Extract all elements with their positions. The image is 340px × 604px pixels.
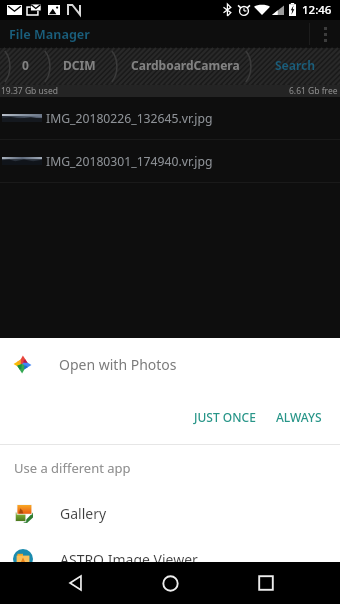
button[interactable]: More options [310,20,340,48]
button[interactable]: ALWAYS [269,402,329,432]
staticText: IMG_20180226_132645.vr.jpg [46,110,213,127]
button[interactable]: IMG_20180226_132645.vr.jpg [0,97,340,139]
button[interactable]: File Manager [0,20,340,48]
staticText: Open with Photos [59,355,177,374]
staticText: 12:46 [302,2,332,18]
staticText: DCIM [63,57,96,73]
button[interactable]: Open with Photos [0,338,340,390]
button[interactable]: CardboardCamera [121,48,250,85]
staticText: IMG_20180301_174940.vr.jpg [46,153,213,170]
button[interactable]: Back [35,562,115,604]
button[interactable]: ASTRO Image Viewer [0,536,340,582]
staticText: Gallery [60,504,107,523]
staticText: Search [275,57,316,73]
staticText: ALWAYS [276,409,322,425]
staticText: Use a different app [14,459,131,477]
button[interactable]: DCIM [48,48,111,85]
staticText: ASTRO Image Viewer [60,550,198,569]
button[interactable]: Search [250,48,340,85]
staticText: CardboardCamera [131,57,240,73]
button[interactable]: Home [130,562,210,604]
staticText: 19.37 Gb used [1,85,58,97]
staticText: 0 [22,57,29,73]
button[interactable]: IMG_20180301_174940.vr.jpg [0,140,340,182]
button[interactable]: Gallery [0,490,340,536]
staticText: File Manager [9,26,90,43]
staticText: 6.61 Gb free [289,85,338,97]
button[interactable]: Recents [226,562,306,604]
staticText: JUST ONCE [194,409,256,425]
button[interactable]: 0 [7,48,44,85]
button[interactable]: JUST ONCE [187,402,263,432]
